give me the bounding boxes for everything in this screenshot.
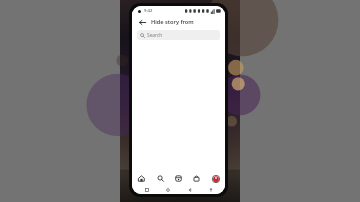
button[interactable]: Back (137, 17, 147, 27)
staticText: Search (147, 32, 163, 39)
staticText: 9:42 (144, 8, 153, 14)
button[interactable]: Back (182, 185, 197, 194)
staticText: Hide story from (151, 18, 194, 26)
button[interactable]: Home (160, 185, 175, 194)
button[interactable]: Home (133, 172, 150, 185)
button[interactable]: Search (152, 172, 169, 185)
button[interactable]: Recents (139, 185, 154, 194)
button[interactable]: Keyboard (203, 185, 218, 194)
button[interactable]: Profile (207, 172, 224, 185)
button[interactable]: Shop (188, 172, 205, 185)
button[interactable]: Search (137, 30, 220, 40)
button[interactable]: Reels (170, 172, 187, 185)
